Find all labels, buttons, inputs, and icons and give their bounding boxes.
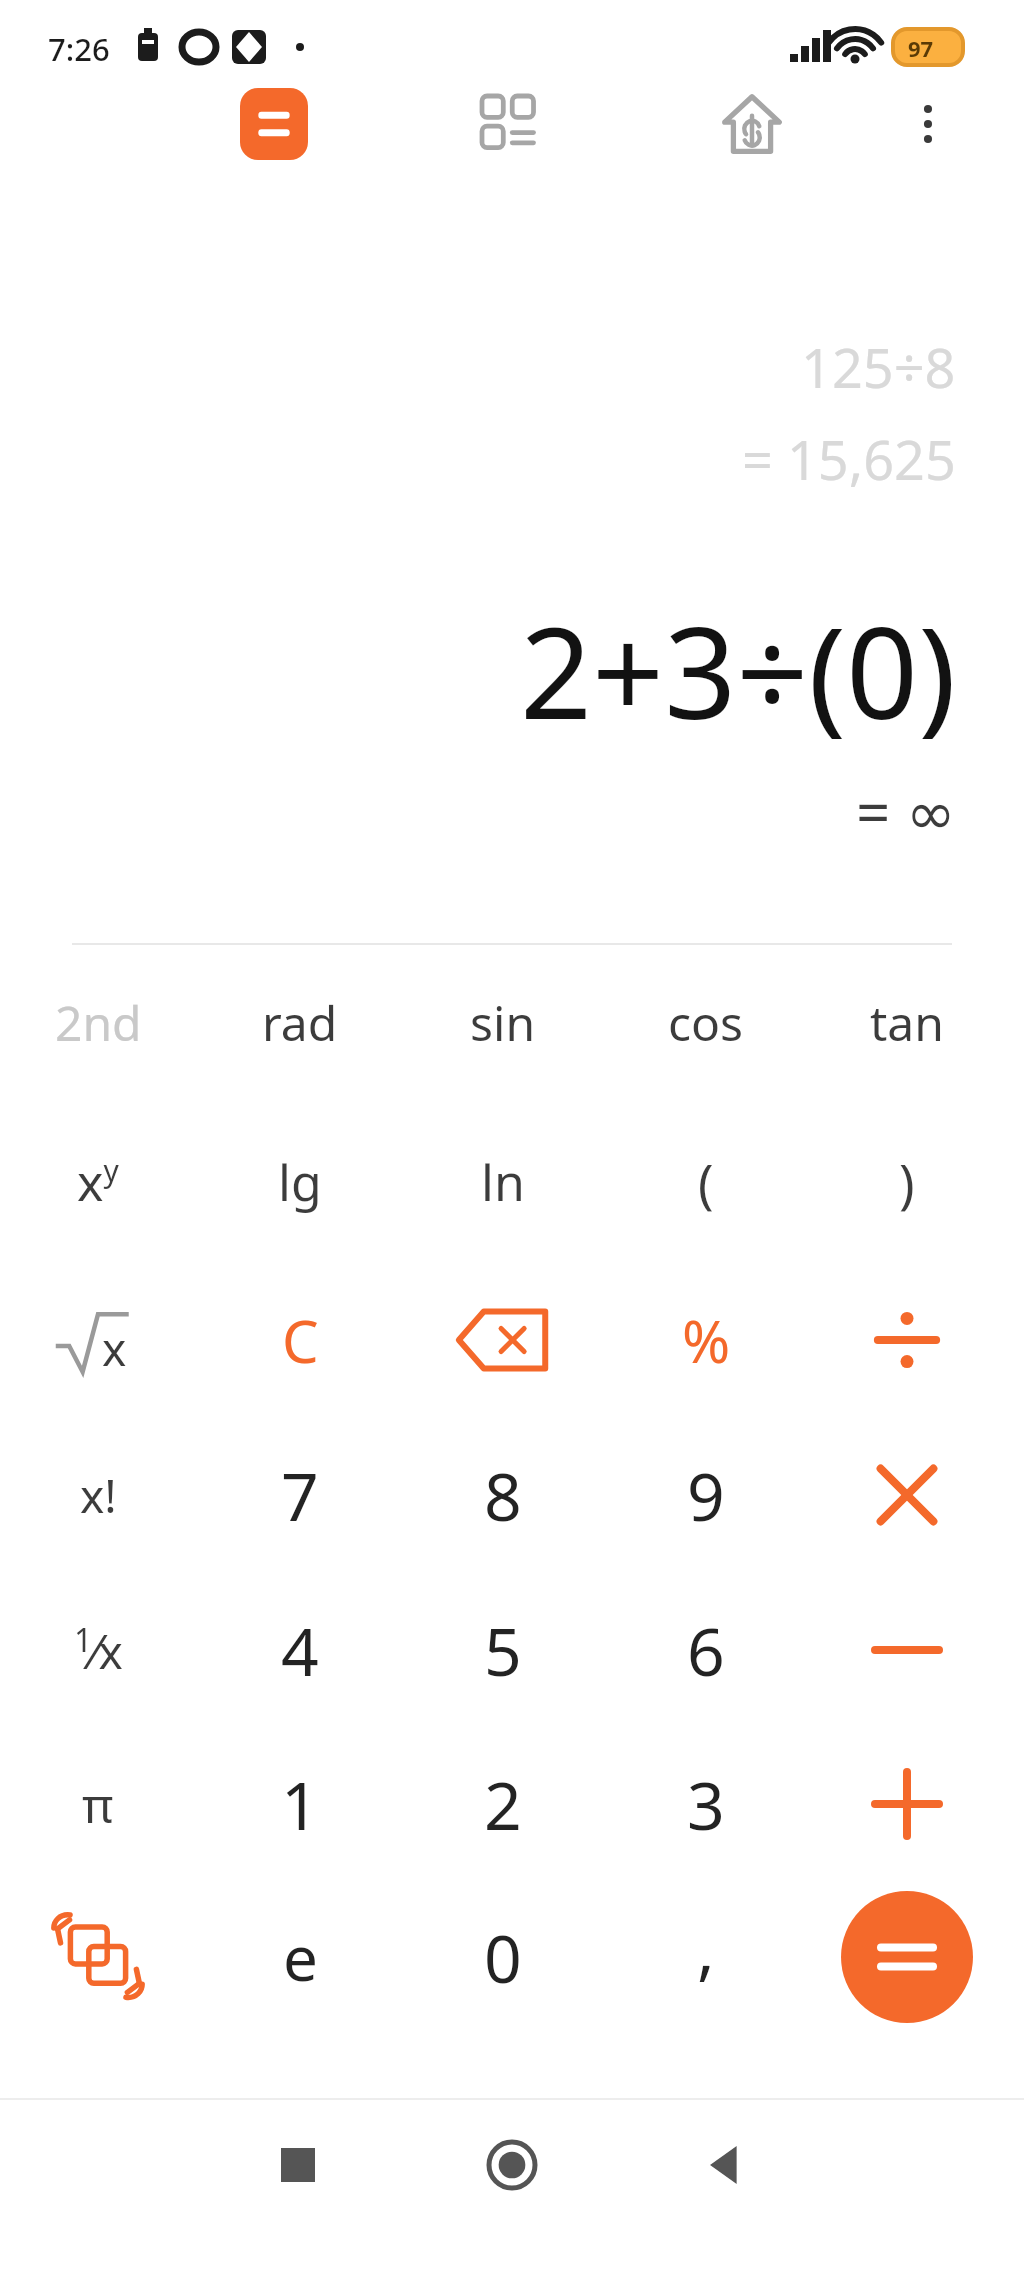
- button[interactable]: lg: [210, 1112, 390, 1252]
- button[interactable]: Loan calculator: [712, 84, 792, 164]
- staticText: = ∞: [856, 770, 956, 852]
- button[interactable]: Back: [686, 2125, 766, 2205]
- staticText: xy: [77, 1148, 119, 1216]
- button[interactable]: Plus: [817, 1734, 997, 1874]
- button[interactable]: Backspace: [413, 1270, 593, 1410]
- button[interactable]: xy: [8, 1112, 188, 1252]
- staticText: 125÷8: [801, 330, 956, 404]
- button[interactable]: 8: [413, 1425, 593, 1565]
- staticText: 2nd: [55, 990, 142, 1055]
- button[interactable]: More options: [890, 86, 966, 162]
- other: Plus: [871, 1768, 943, 1840]
- staticText: C: [282, 1301, 319, 1380]
- staticText: x: [102, 1317, 127, 1380]
- button[interactable]: Home: [472, 2125, 552, 2205]
- staticText: ln: [481, 1148, 525, 1216]
- button[interactable]: (: [616, 1112, 796, 1252]
- button[interactable]: 1⁄x: [8, 1580, 188, 1720]
- staticText: 2: [484, 1759, 522, 1849]
- staticText: %: [682, 1301, 731, 1380]
- button[interactable]: π: [8, 1734, 188, 1874]
- other: Minus: [871, 1630, 943, 1670]
- other: Switch layout: [52, 1913, 144, 2001]
- button[interactable]: 2: [413, 1734, 593, 1874]
- button[interactable]: x!: [8, 1425, 188, 1565]
- button[interactable]: Equals: [841, 1891, 973, 2023]
- button[interactable]: C: [210, 1270, 390, 1410]
- button[interactable]: 1: [210, 1734, 390, 1874]
- other: Multiply: [874, 1462, 940, 1528]
- staticText: 5: [484, 1605, 522, 1695]
- button[interactable]: 5: [413, 1580, 593, 1720]
- button[interactable]: Recent apps: [258, 2125, 338, 2205]
- staticText: 97: [908, 33, 934, 63]
- staticText: lg: [278, 1148, 322, 1216]
- staticText: e: [283, 1915, 318, 1999]
- other: Backspace: [455, 1306, 551, 1374]
- other: Divide: [871, 1304, 943, 1376]
- staticText: ): [899, 1147, 915, 1218]
- staticText: 6: [687, 1605, 725, 1695]
- button[interactable]: cos: [616, 952, 796, 1092]
- staticText: 3: [687, 1759, 725, 1849]
- button[interactable]: 7: [210, 1425, 390, 1565]
- staticText: rad: [262, 990, 338, 1055]
- staticText: 8: [484, 1450, 522, 1540]
- button[interactable]: ): [817, 1112, 997, 1252]
- button[interactable]: Multiply: [817, 1425, 997, 1565]
- button[interactable]: %: [616, 1270, 796, 1410]
- button[interactable]: Switch layout: [8, 1887, 188, 2027]
- staticText: 7:26: [48, 28, 110, 70]
- button[interactable]: tan: [817, 952, 997, 1092]
- staticText: x!: [80, 1464, 117, 1527]
- button[interactable]: sin: [413, 952, 593, 1092]
- staticText: sin: [470, 990, 536, 1055]
- button[interactable]: 0: [413, 1887, 593, 2027]
- staticText: (: [698, 1147, 714, 1218]
- button[interactable]: ln: [413, 1112, 593, 1252]
- button[interactable]: 6: [616, 1580, 796, 1720]
- button[interactable]: rad: [210, 952, 390, 1092]
- button[interactable]: 9: [616, 1425, 796, 1565]
- button[interactable]: Divide: [817, 1270, 997, 1410]
- button[interactable]: 2nd: [8, 952, 188, 1092]
- staticText: cos: [668, 990, 744, 1055]
- staticText: 7: [281, 1450, 319, 1540]
- button[interactable]: x: [8, 1270, 188, 1410]
- staticText: 9: [687, 1450, 725, 1540]
- button[interactable]: Minus: [817, 1580, 997, 1720]
- staticText: tan: [870, 990, 944, 1055]
- staticText: = 15,625: [742, 422, 956, 496]
- button[interactable]: Calculator: [240, 88, 308, 160]
- staticText: 4: [281, 1605, 319, 1695]
- button[interactable]: ,: [616, 1887, 796, 2027]
- staticText: 2+3÷(0): [520, 584, 956, 756]
- button[interactable]: Converter: [470, 88, 550, 160]
- button[interactable]: 4: [210, 1580, 390, 1720]
- staticText: 1⁄x: [74, 1618, 123, 1683]
- staticText: 0: [484, 1912, 522, 2002]
- staticText: 1: [281, 1759, 319, 1849]
- button[interactable]: 3: [616, 1734, 796, 1874]
- button[interactable]: e: [210, 1887, 390, 2027]
- staticText: π: [82, 1772, 114, 1837]
- staticText: ,: [697, 1903, 715, 1983]
